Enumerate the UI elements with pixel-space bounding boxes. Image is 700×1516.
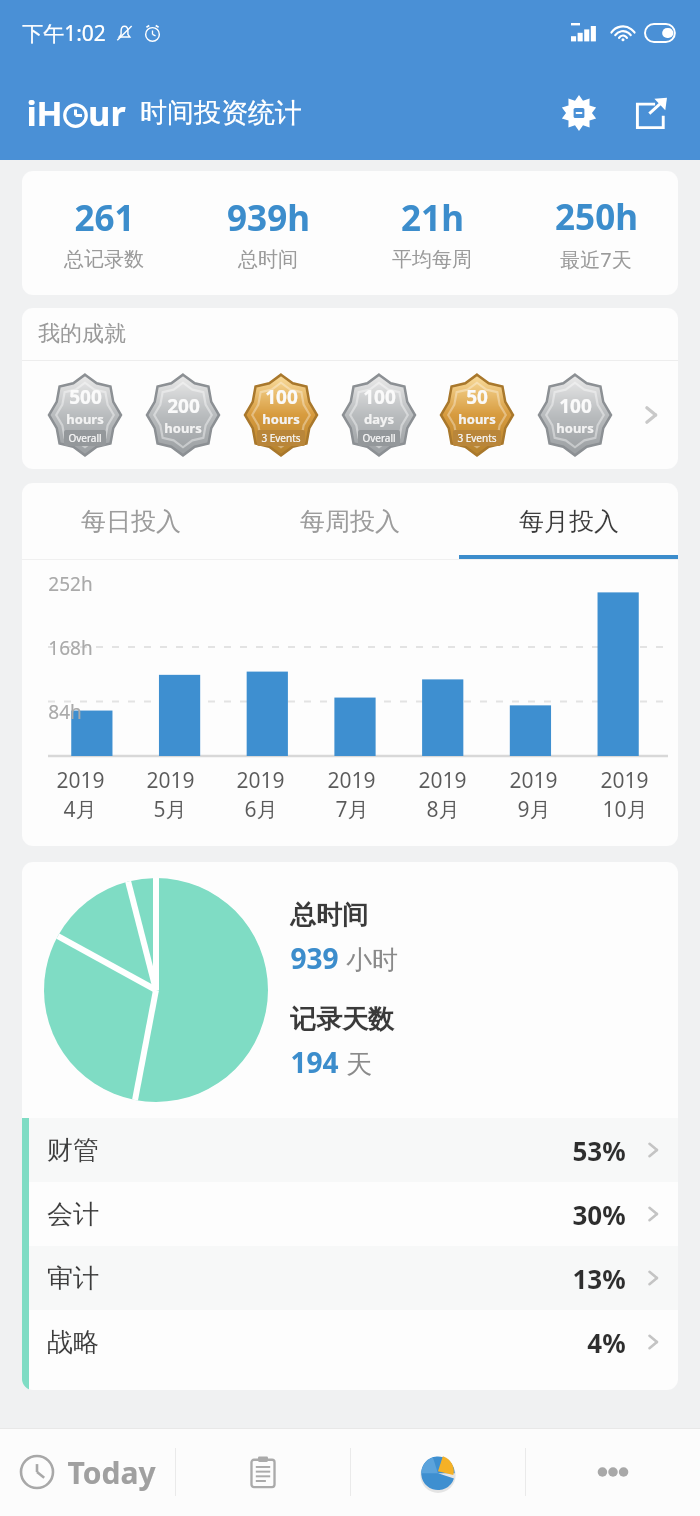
- staticText: 5月: [153, 795, 187, 824]
- button[interactable]: 财管: [22, 1118, 678, 1182]
- staticText: Today: [67, 1452, 156, 1493]
- staticText: 500: [69, 384, 102, 410]
- staticText: 100: [559, 393, 592, 419]
- staticText: 2019: [146, 766, 195, 795]
- staticText: ur: [88, 90, 126, 136]
- button[interactable]: Today: [0, 1428, 175, 1516]
- staticText: 我的成就: [38, 320, 126, 348]
- staticText: 2019: [509, 766, 558, 795]
- staticText: days: [364, 410, 394, 428]
- staticText: 100: [363, 384, 396, 410]
- button[interactable]: Share: [622, 84, 680, 142]
- staticText: 261: [74, 194, 135, 242]
- staticText: 84h: [48, 699, 82, 725]
- staticText: 2019: [327, 766, 376, 795]
- staticText: 战略: [47, 1326, 99, 1359]
- staticText: 13%: [572, 1261, 626, 1296]
- staticText: 4月: [63, 795, 97, 824]
- staticText: 下午1:02: [22, 19, 106, 48]
- staticText: 6月: [244, 795, 278, 824]
- staticText: 3 Events: [457, 431, 497, 445]
- staticText: 8月: [426, 795, 460, 824]
- staticText: Overall: [362, 431, 396, 445]
- staticText: 168h: [48, 635, 93, 661]
- button[interactable]: 250h: [514, 193, 678, 273]
- staticText: 总时间: [290, 899, 368, 932]
- button[interactable]: Records: [176, 1428, 350, 1516]
- staticText: 财管: [47, 1134, 99, 1167]
- staticText: 天: [346, 1048, 372, 1081]
- staticText: 最近7天: [560, 246, 632, 273]
- staticText: 53%: [572, 1133, 626, 1168]
- button[interactable]: 261: [22, 194, 186, 272]
- staticText: 250h: [555, 193, 638, 241]
- button[interactable]: Settings: [550, 84, 608, 142]
- button[interactable]: 每周投入: [240, 483, 459, 559]
- button[interactable]: 939h: [186, 194, 350, 272]
- staticText: hours: [164, 419, 202, 437]
- staticText: 252h: [48, 571, 93, 597]
- staticText: 50: [466, 384, 488, 410]
- staticText: 200: [167, 393, 200, 419]
- staticText: hours: [66, 410, 104, 428]
- staticText: 每日投入: [81, 506, 181, 537]
- staticText: 3 Events: [261, 431, 301, 445]
- staticText: 时间投资统计: [140, 96, 302, 130]
- staticText: 总时间: [238, 247, 298, 272]
- staticText: 2019: [236, 766, 285, 795]
- button[interactable]: 每日投入: [22, 483, 240, 559]
- staticText: iH: [26, 90, 63, 136]
- staticText: 记录天数: [290, 1003, 394, 1036]
- staticText: 平均每周: [392, 247, 472, 272]
- staticText: 30%: [572, 1197, 626, 1232]
- button[interactable]: More: [526, 1428, 700, 1516]
- staticText: 4%: [587, 1325, 626, 1360]
- staticText: 7月: [335, 795, 369, 824]
- staticText: 100: [265, 384, 298, 410]
- button[interactable]: 21h: [350, 194, 514, 272]
- button[interactable]: Statistics: [351, 1428, 525, 1516]
- staticText: 每周投入: [300, 506, 400, 537]
- button[interactable]: 战略: [22, 1310, 678, 1374]
- staticText: 2019: [56, 766, 105, 795]
- staticText: 总记录数: [64, 247, 144, 272]
- button[interactable]: 会计: [22, 1182, 678, 1246]
- button[interactable]: 500: [22, 361, 678, 469]
- staticText: 9月: [517, 795, 551, 824]
- staticText: 10月: [602, 795, 648, 824]
- staticText: 2019: [600, 766, 649, 795]
- staticText: 21h: [401, 194, 464, 242]
- staticText: 939: [290, 939, 339, 977]
- button[interactable]: 每月投入: [459, 483, 678, 559]
- staticText: 每月投入: [519, 506, 619, 537]
- staticText: 审计: [47, 1262, 99, 1295]
- staticText: 939h: [227, 194, 310, 242]
- staticText: Overall: [68, 431, 102, 445]
- staticText: 会计: [47, 1198, 99, 1231]
- staticText: hours: [262, 410, 300, 428]
- button[interactable]: 审计: [22, 1246, 678, 1310]
- staticText: hours: [556, 419, 594, 437]
- staticText: hours: [458, 410, 496, 428]
- staticText: 小时: [346, 944, 398, 977]
- staticText: 2019: [418, 766, 467, 795]
- staticText: 194: [290, 1043, 339, 1081]
